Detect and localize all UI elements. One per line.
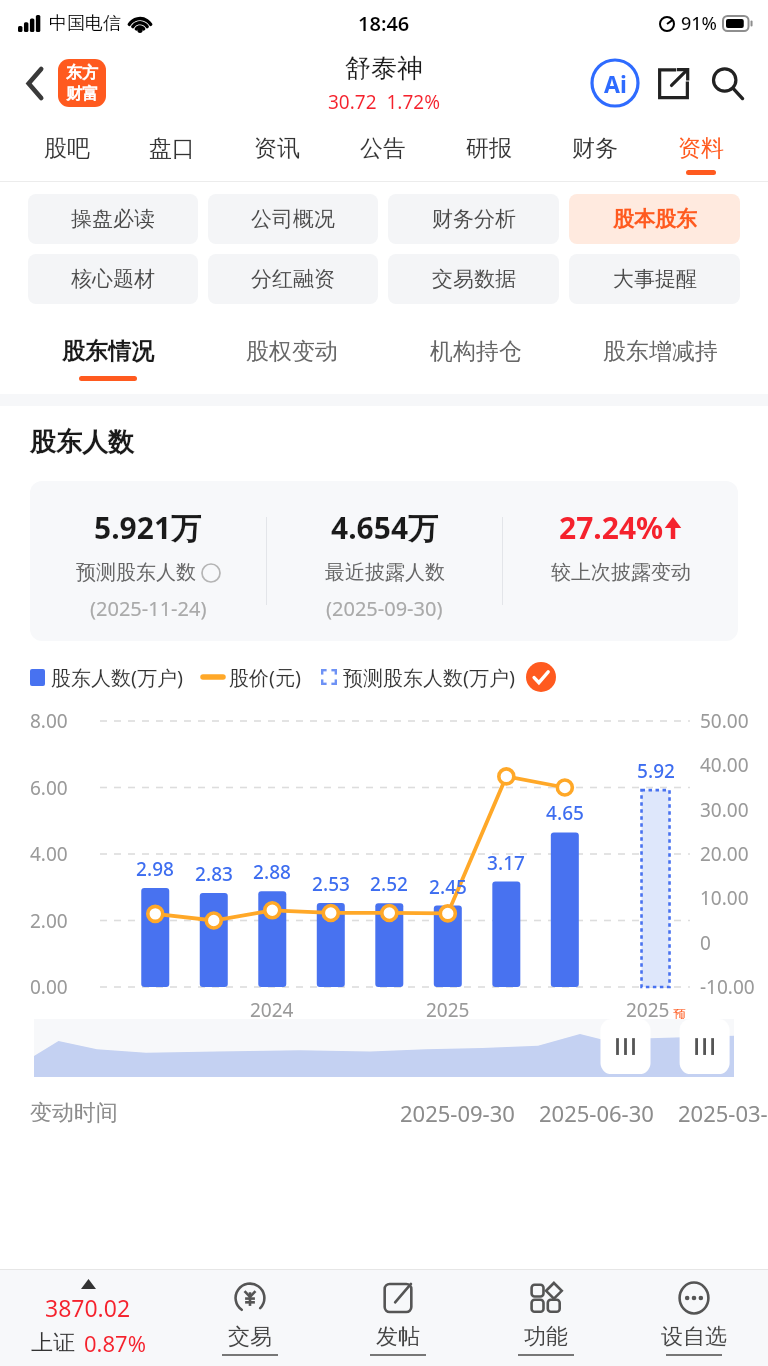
button[interactable]: Search [700, 56, 754, 110]
button[interactable]: 操盘必读 [28, 194, 198, 244]
staticText: 30.00 [700, 797, 749, 823]
staticText: 20.00 [700, 841, 749, 867]
button[interactable]: 资料 [648, 120, 754, 182]
staticText: 2.83 [188, 861, 240, 887]
staticText: 91% [681, 11, 717, 36]
button[interactable]: Back [12, 60, 58, 106]
staticText: 最近披露人数 [325, 560, 445, 585]
staticText: 2025 [626, 997, 670, 1023]
staticText: (2025-11-24) [90, 595, 207, 622]
staticText: 2.98 [129, 856, 181, 882]
staticText: 8.00 [30, 708, 68, 734]
staticText: Ai [604, 68, 627, 99]
button[interactable]: 设自选 [620, 1270, 768, 1366]
button[interactable]: 东方财富 [58, 59, 106, 107]
staticText: 盘口 [149, 134, 195, 163]
button[interactable]: 公告 [330, 120, 436, 182]
staticText: 5.921万 [94, 507, 202, 548]
staticText: 0.00 [30, 974, 68, 1000]
staticText: 3870.02 [45, 1292, 131, 1323]
staticText: 5.92 [630, 758, 682, 784]
staticText: 03-31 [423, 1027, 473, 1053]
staticText: 股价(元) [229, 664, 301, 691]
button[interactable]: 股本股东 [569, 194, 740, 244]
staticText: 0.87% [84, 1328, 146, 1358]
button[interactable]: 交易 [176, 1270, 324, 1366]
button[interactable]: AI assistant [588, 56, 642, 110]
button[interactable]: 功能 [472, 1270, 620, 1366]
staticText: 设自选 [661, 1323, 727, 1351]
staticText: 机构持仓 [430, 337, 522, 366]
staticText: 预 [670, 1005, 687, 1023]
button[interactable]: 机构持仓 [384, 316, 568, 394]
button[interactable]: 股吧 [14, 120, 119, 182]
staticText: 股权变动 [246, 337, 338, 366]
staticText: 核心题材 [71, 266, 155, 292]
button[interactable]: 分红融资 [208, 254, 378, 304]
button[interactable]: 盘口 [119, 120, 224, 182]
staticText: 2025-09-30 [400, 1098, 515, 1128]
button[interactable]: 3870.02 [0, 1270, 176, 1366]
staticText: 交易数据 [432, 266, 516, 292]
staticText: 股东人数(万户) [51, 664, 183, 691]
staticText: 预测股东人数(万户) [343, 664, 515, 691]
staticText: 2024 [250, 997, 294, 1023]
staticText: 股东情况 [62, 337, 154, 366]
staticText: 50.00 [700, 708, 749, 734]
staticText: 2025-06-30 [539, 1098, 654, 1128]
staticText: 股吧 [44, 134, 90, 163]
staticText: 2.88 [246, 859, 298, 885]
staticText: 6.00 [30, 775, 68, 801]
button[interactable]: 交易数据 [388, 254, 559, 304]
staticText: 交易 [228, 1323, 272, 1351]
staticText: 4.65 [539, 800, 591, 826]
staticText: 11-24 [631, 1027, 681, 1053]
button[interactable]: 股东增减持 [568, 316, 752, 394]
staticText: 2.00 [30, 908, 68, 934]
staticText: 功能 [524, 1323, 568, 1351]
staticText: 变动时间 [30, 1099, 118, 1127]
staticText: 2.53 [305, 871, 357, 897]
button[interactable]: 研报 [436, 120, 542, 182]
button[interactable]: 财务 [542, 120, 648, 182]
staticText: 10.00 [700, 885, 749, 911]
staticText: 0 [700, 930, 711, 956]
button[interactable]: 核心题材 [28, 254, 198, 304]
staticText: 财务分析 [432, 206, 516, 232]
staticText: 资料 [678, 134, 724, 163]
staticText: (2025-09-30) [326, 595, 443, 622]
staticText: 操盘必读 [71, 206, 155, 232]
staticText: 大事提醒 [613, 266, 697, 292]
button[interactable]: 财务分析 [388, 194, 559, 244]
staticText: 资讯 [254, 134, 300, 163]
staticText: 18:46 [358, 10, 410, 37]
staticText: 27.24% [559, 507, 664, 548]
button[interactable]: Share [646, 56, 700, 110]
staticText: 4.00 [30, 841, 68, 867]
staticText: -10.00 [700, 974, 755, 1000]
staticText: 30.72 1.72% [328, 89, 440, 115]
staticText: 较上次披露变动 [551, 560, 691, 585]
staticText: 财务 [572, 134, 618, 163]
staticText: 2025 [426, 997, 470, 1023]
staticText: 公司概况 [251, 206, 335, 232]
staticText: 舒泰神 [345, 52, 423, 85]
button[interactable]: 股权变动 [200, 316, 384, 394]
button[interactable]: 公司概况 [208, 194, 378, 244]
button[interactable]: 大事提醒 [569, 254, 740, 304]
button[interactable]: 股东情况 [16, 316, 200, 394]
button[interactable]: 发帖 [324, 1270, 472, 1366]
staticText: 40.00 [700, 752, 749, 778]
staticText: 研报 [466, 134, 512, 163]
staticText: 分红融资 [251, 266, 335, 292]
staticText: 上证 [31, 1329, 75, 1357]
button[interactable]: Toggle forecast series [525, 661, 557, 693]
staticText: 股东人数 [30, 426, 134, 459]
staticText: 09-30 [247, 1027, 297, 1053]
staticText: 2.45 [422, 874, 474, 900]
staticText: 财富 [66, 84, 98, 104]
button[interactable]: 资讯 [224, 120, 330, 182]
staticText: 股东增减持 [603, 337, 718, 366]
staticText: 公告 [360, 134, 406, 163]
staticText: 4.654万 [331, 507, 439, 548]
